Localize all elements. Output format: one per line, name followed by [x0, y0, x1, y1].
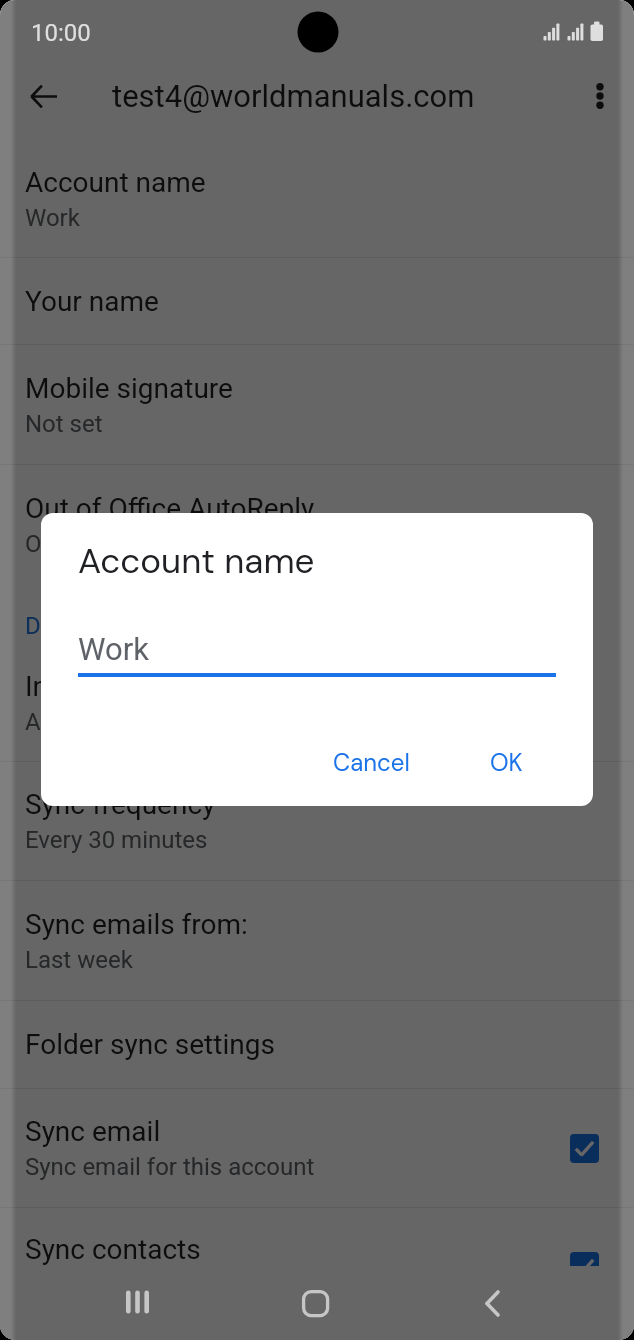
button[interactable]: Navigate up: [17, 70, 69, 122]
staticText: Incoming settings: [25, 670, 249, 703]
button[interactable]: Sync contacts: [0, 1208, 634, 1324]
button[interactable]: Home: [265, 1266, 365, 1340]
button[interactable]: More options: [574, 70, 626, 122]
staticText: Cancel: [333, 747, 410, 778]
button[interactable]: Mobile signature: [0, 345, 634, 464]
staticText: Your name: [25, 285, 159, 318]
button[interactable]: Sync emails from:: [0, 881, 634, 1000]
staticText: Off: [25, 530, 59, 558]
button[interactable]: Account name: [0, 140, 634, 257]
staticText: Out of Office AutoReply: [25, 492, 315, 525]
staticText: Sync email for this account: [25, 1153, 315, 1181]
button[interactable]: Incoming settings: [0, 644, 634, 761]
staticText: test4@worldmanuals.com: [112, 78, 475, 114]
staticText: Every 30 minutes: [25, 826, 208, 854]
staticText: Sync frequency: [25, 788, 216, 821]
staticText: OK: [490, 747, 523, 778]
staticText: Sync contacts for this account: [25, 1271, 350, 1299]
staticText: Sync emails from:: [25, 908, 248, 941]
staticText: Not set: [25, 410, 103, 438]
staticText: Data usage: [25, 612, 146, 640]
button[interactable]: Cancel: [313, 735, 430, 790]
button[interactable]: Sync email: [0, 1089, 634, 1207]
button[interactable]: Your name: [0, 258, 634, 344]
staticText: Folder sync settings: [25, 1028, 275, 1061]
button[interactable]: Back: [442, 1266, 542, 1340]
staticText: 10:00: [31, 19, 91, 47]
staticText: Work: [78, 631, 149, 667]
staticText: Mobile signature: [25, 372, 233, 405]
staticText: Work: [25, 204, 80, 232]
button[interactable]: Out of Office AutoReply: [0, 465, 634, 584]
staticText: Sync contacts: [25, 1233, 201, 1266]
staticText: Authentication type: [25, 708, 233, 736]
button[interactable]: Folder sync settings: [0, 1001, 634, 1088]
button[interactable]: OK: [470, 735, 543, 790]
button[interactable]: Sync frequency: [0, 762, 634, 880]
staticText: Sync email: [25, 1115, 161, 1148]
button[interactable]: Recent apps: [87, 1266, 187, 1340]
staticText: Account name: [78, 538, 315, 584]
staticText: Last week: [25, 946, 133, 974]
staticText: Account name: [25, 166, 206, 199]
